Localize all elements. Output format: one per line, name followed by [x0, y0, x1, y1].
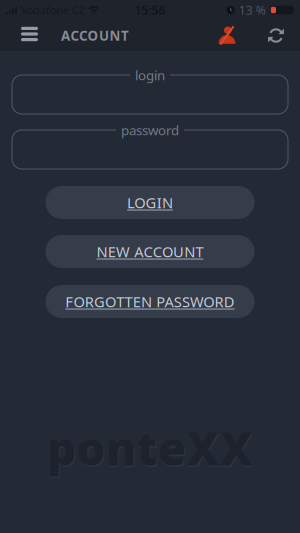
staticText: NEW ACCOUNT [96, 242, 203, 261]
button[interactable]: LOGIN [45, 186, 254, 219]
staticText: ponteXX [47, 418, 253, 478]
button[interactable]: Refresh [268, 27, 300, 43]
staticText: 13 % [239, 2, 266, 18]
staticText: ponteXX [48, 419, 254, 480]
button[interactable]: login [12, 75, 288, 114]
staticText: FORGOTTEN PASSWORD [65, 292, 235, 311]
staticText: Vodafone CZ [21, 3, 85, 17]
staticText: LOGIN [127, 193, 173, 212]
button[interactable]: Log out [218, 26, 268, 45]
staticText: password [121, 121, 179, 139]
button[interactable]: Menu [0, 28, 48, 43]
button[interactable]: NEW ACCOUNT [45, 235, 254, 268]
button[interactable]: password [12, 130, 288, 169]
staticText: login [135, 66, 165, 84]
staticText: ACCOUNT [61, 27, 129, 44]
button[interactable]: FORGOTTEN PASSWORD [45, 285, 254, 318]
staticText: 15:56 [134, 2, 165, 18]
